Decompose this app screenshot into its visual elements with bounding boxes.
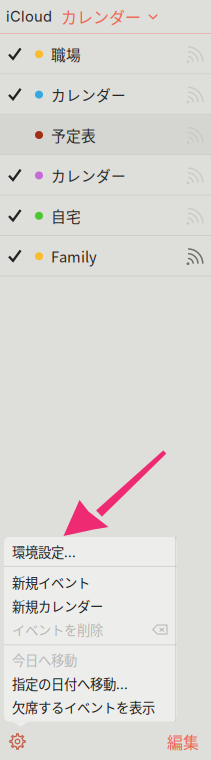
button[interactable]: イベントを削除 [4,618,177,641]
staticText: 欠席するイベントを表示 [12,697,155,717]
button[interactable]: 新規イベント [4,570,177,594]
staticText: 予定表 [51,124,96,146]
staticText: Family [51,246,97,267]
button[interactable]: 職場 [0,34,211,74]
button[interactable]: 欠席するイベントを表示 [4,695,177,719]
staticText: iCloud [6,8,52,25]
staticText: イベントを削除 [12,620,103,639]
staticText: カレンダー [51,165,126,186]
button[interactable]: 新規カレンダー [4,594,177,618]
button[interactable]: 編集 [167,730,199,753]
staticText: カレンダー [61,5,141,28]
button[interactable]: 予定表 [0,115,211,155]
button[interactable]: iCloud [0,0,211,33]
staticText: 指定の日付へ移動... [12,674,128,693]
staticText: 新規イベント [12,572,90,592]
staticText: 今日へ移動 [12,650,77,669]
staticText: 新規カレンダー [12,596,103,615]
button[interactable]: 指定の日付へ移動... [4,671,177,695]
staticText: 環境設定... [12,542,76,561]
button[interactable]: カレンダー [0,74,211,115]
button[interactable]: Family [0,236,211,276]
button[interactable]: カレンダー [0,155,211,196]
staticText: カレンダー [51,84,126,105]
staticText: 職場 [51,44,81,65]
button[interactable]: 環境設定... [4,540,177,563]
staticText: 編集 [167,730,199,753]
button[interactable]: Settings [8,732,27,751]
staticText: 自宅 [51,205,81,226]
button[interactable]: 自宅 [0,196,211,236]
button[interactable]: 今日へ移動 [4,648,177,671]
